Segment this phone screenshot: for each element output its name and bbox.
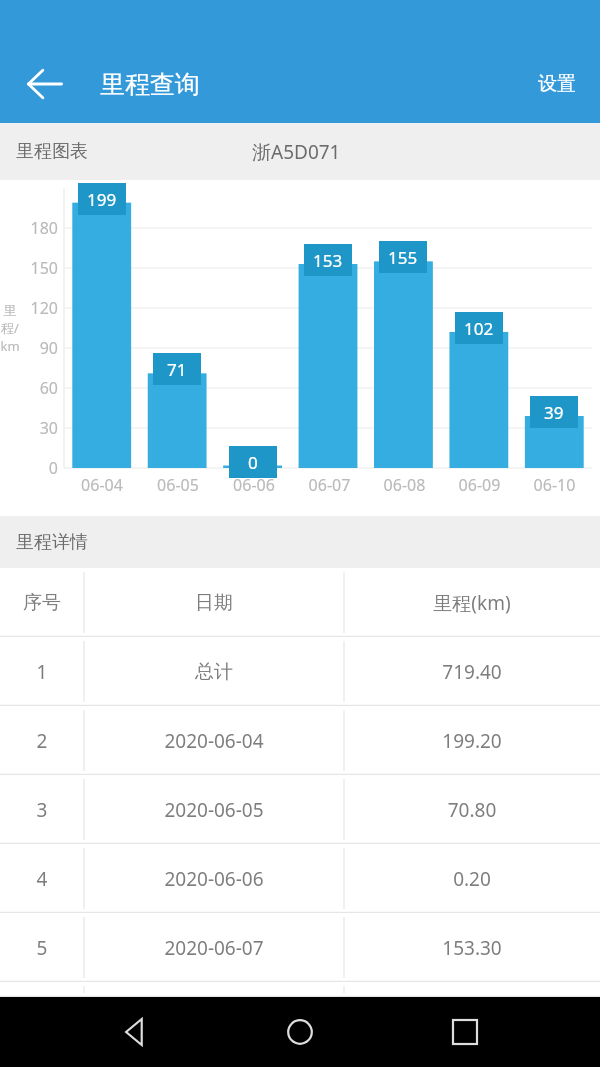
staticText: 06-10 bbox=[517, 474, 592, 496]
staticText: 06-05 bbox=[140, 474, 216, 496]
staticText: 里程(km) bbox=[344, 590, 600, 616]
staticText: 90 bbox=[18, 337, 58, 359]
button[interactable]: 1 bbox=[0, 637, 600, 706]
button[interactable]: 设置 bbox=[514, 45, 600, 123]
staticText: 70.80 bbox=[344, 797, 600, 823]
staticText: 06-04 bbox=[64, 474, 140, 496]
staticText bbox=[344, 982, 600, 997]
button[interactable]: Back bbox=[14, 53, 76, 115]
staticText: 0 bbox=[18, 457, 58, 479]
staticText: 199 bbox=[87, 188, 117, 211]
staticText: 设置 bbox=[538, 72, 576, 96]
staticText: 浙A5D071 bbox=[252, 139, 341, 165]
staticText: 180 bbox=[18, 217, 58, 239]
staticText: 06-07 bbox=[292, 474, 367, 496]
staticText: 06-06 bbox=[216, 474, 292, 496]
staticText: 06-09 bbox=[442, 474, 517, 496]
staticText: 0.20 bbox=[344, 866, 600, 892]
staticText: 5 bbox=[0, 935, 84, 961]
staticText: 2020-06-04 bbox=[84, 728, 344, 754]
staticText: 102 bbox=[464, 317, 494, 340]
staticText: 0 bbox=[248, 451, 258, 474]
staticText: 71 bbox=[167, 358, 187, 381]
staticText: 日期 bbox=[84, 591, 344, 615]
staticText: 里程/km bbox=[0, 302, 20, 355]
staticText: 2 bbox=[0, 728, 84, 754]
staticText: 里程图表 bbox=[16, 140, 88, 163]
staticText: 120 bbox=[18, 297, 58, 319]
staticText: 719.40 bbox=[344, 659, 600, 685]
staticText: 30 bbox=[18, 417, 58, 439]
staticText: 4 bbox=[0, 866, 84, 892]
staticText: 60 bbox=[18, 377, 58, 399]
staticText: 2020-06-05 bbox=[84, 797, 344, 823]
staticText: 199.20 bbox=[344, 728, 600, 754]
button[interactable]: 5 bbox=[0, 913, 600, 982]
staticText: 39 bbox=[544, 401, 564, 424]
button[interactable]: 4 bbox=[0, 844, 600, 913]
staticText: 153.30 bbox=[344, 935, 600, 961]
staticText: 150 bbox=[18, 257, 58, 279]
button[interactable]: 3 bbox=[0, 775, 600, 844]
staticText bbox=[0, 982, 84, 997]
button[interactable]: 2 bbox=[0, 706, 600, 775]
staticText: 序号 bbox=[0, 591, 84, 615]
staticText: 153 bbox=[313, 249, 343, 272]
button[interactable] bbox=[0, 982, 600, 997]
staticText: 总计 bbox=[84, 660, 344, 684]
staticText: 2020-06-06 bbox=[84, 866, 344, 892]
staticText: 155 bbox=[388, 246, 418, 269]
button[interactable]: Recents bbox=[436, 1003, 494, 1061]
staticText: 1 bbox=[0, 659, 84, 685]
staticText: 里程详情 bbox=[16, 531, 88, 554]
button[interactable]: 序号 bbox=[0, 568, 600, 637]
staticText: 06-08 bbox=[367, 474, 442, 496]
button[interactable]: Home bbox=[271, 1003, 329, 1061]
staticText: 3 bbox=[0, 797, 84, 823]
staticText bbox=[84, 982, 344, 997]
button[interactable]: Back bbox=[107, 1003, 165, 1061]
staticText: 里程查询 bbox=[100, 69, 200, 100]
staticText: 2020-06-07 bbox=[84, 935, 344, 961]
